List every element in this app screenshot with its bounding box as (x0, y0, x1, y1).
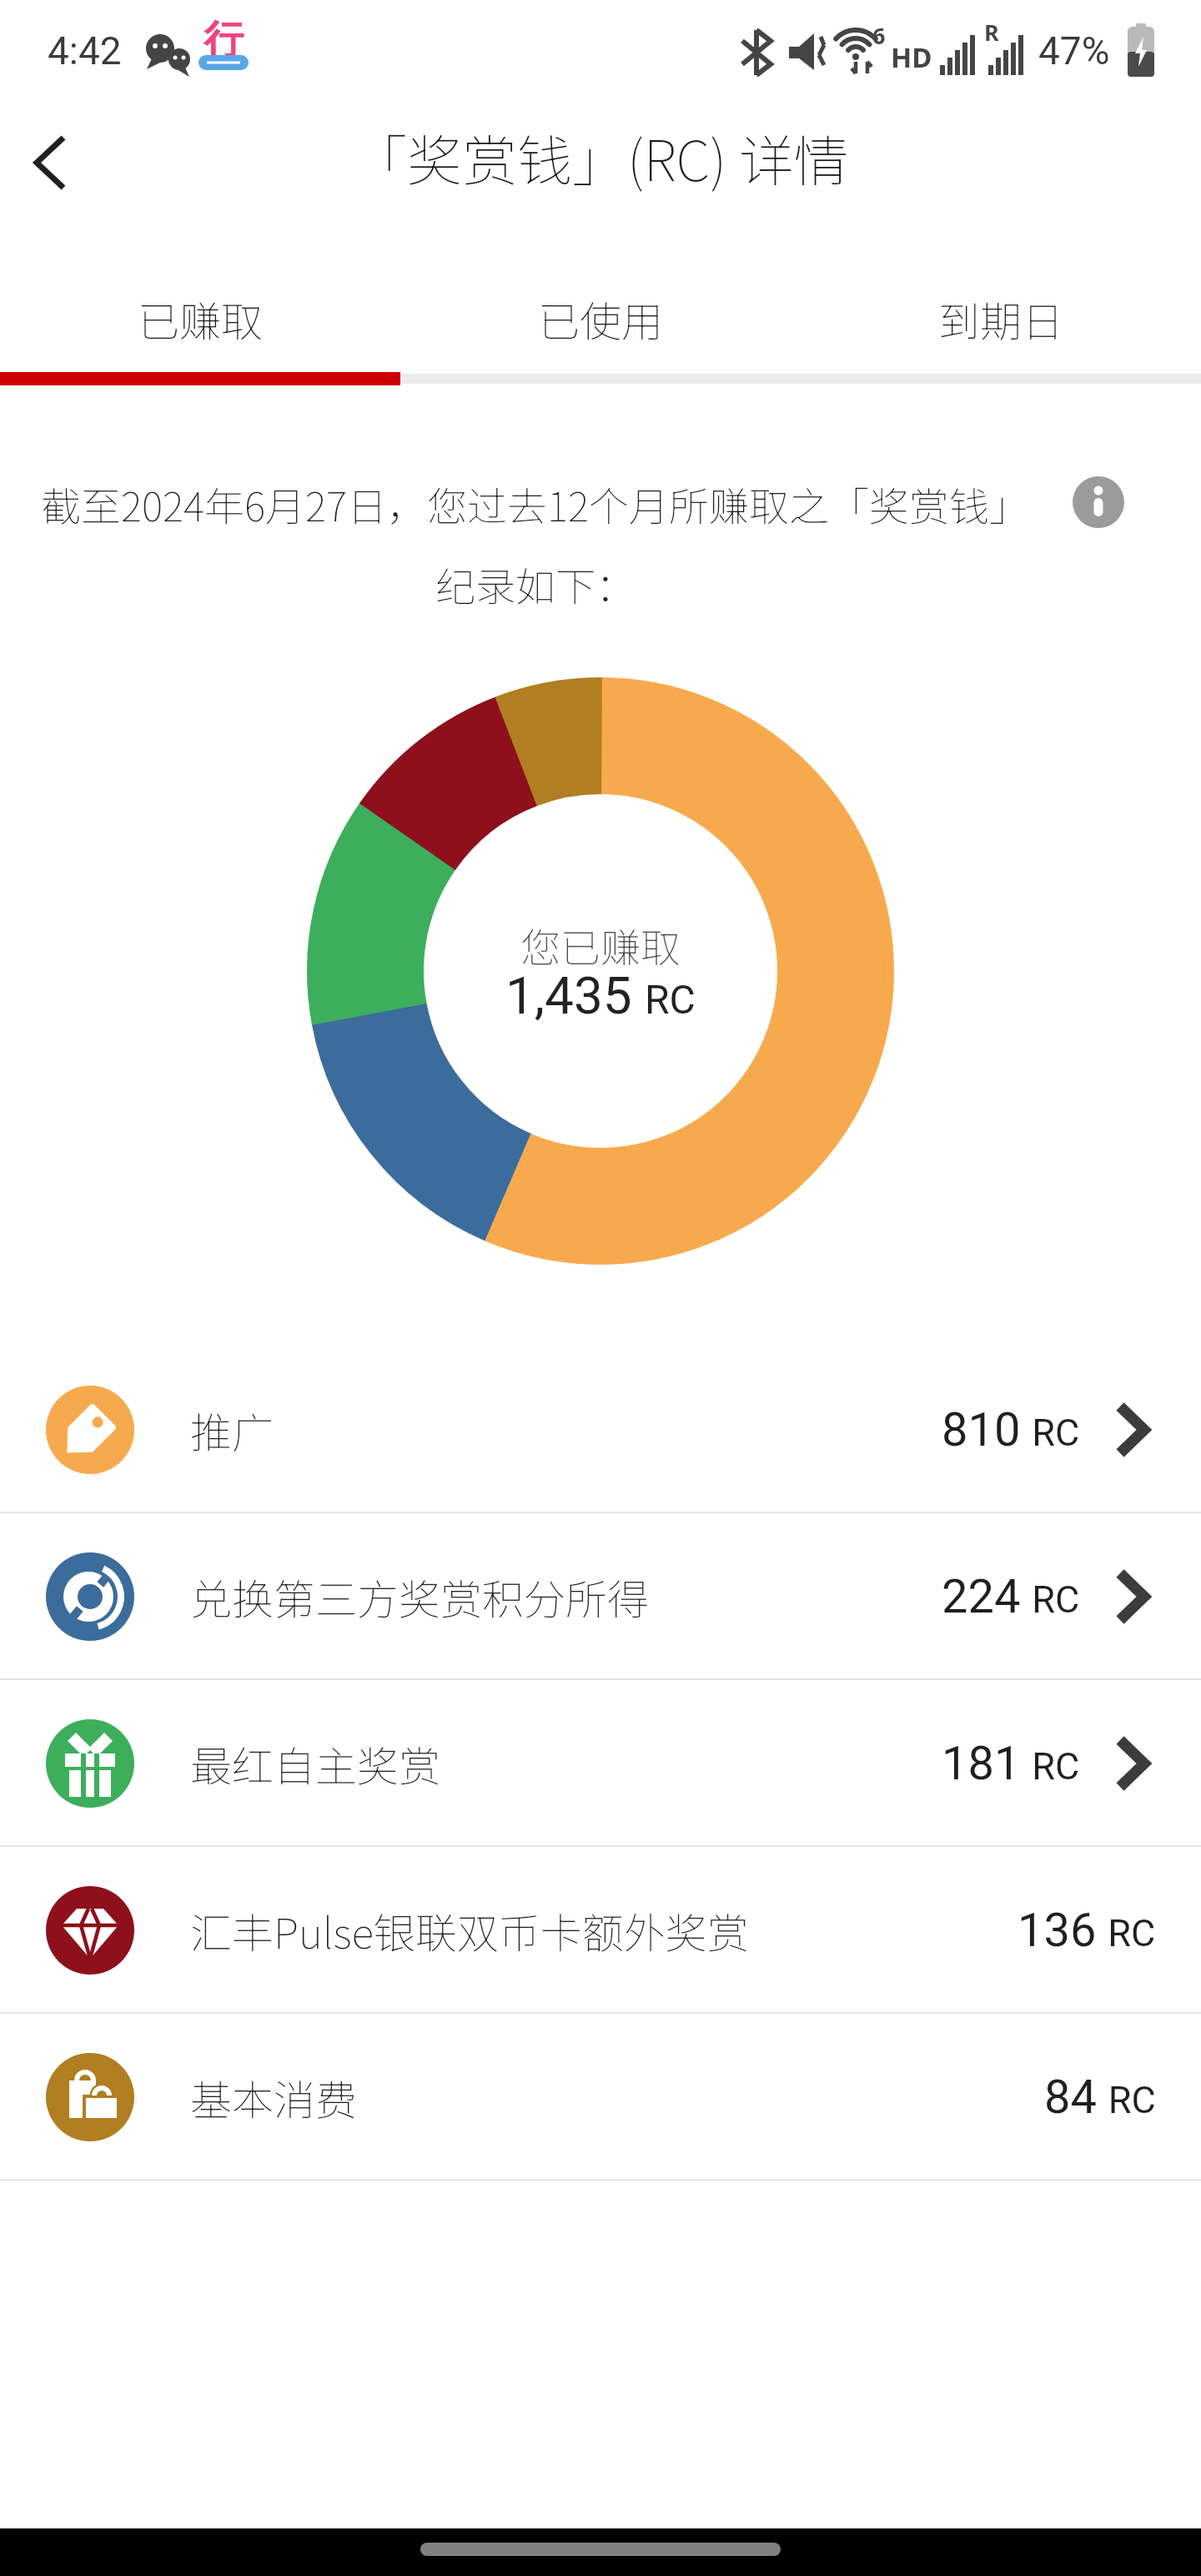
staticText: 已赚取 (138, 289, 263, 349)
button[interactable] (8, 125, 92, 200)
staticText: 136 RC (1018, 1903, 1156, 1958)
staticText: 224 RC (942, 1569, 1080, 1624)
staticText: R (984, 17, 999, 48)
staticText: 兑换第三方奖赏积分所得 (190, 1567, 649, 1627)
staticText: 行 (204, 15, 244, 65)
button[interactable] (1073, 476, 1124, 528)
staticText: 已使用 (538, 289, 663, 349)
button[interactable]: 推广 (0, 1346, 1201, 1513)
button[interactable]: 最红自主奖赏 (0, 1680, 1201, 1847)
button[interactable]: 汇丰Pulse银联双币卡额外奖赏 (0, 1847, 1201, 2014)
staticText: 181 RC (942, 1736, 1080, 1791)
button[interactable]: 已赚取 (0, 270, 400, 367)
staticText: 810 RC (942, 1402, 1080, 1457)
staticText: 推广 (190, 1400, 274, 1460)
button[interactable]: 基本消费 (0, 2014, 1201, 2181)
staticText: HD (891, 38, 932, 76)
staticText: 纪录如下： (435, 555, 636, 613)
staticText: 基本消费 (190, 2067, 357, 2127)
staticText: 1,435 RC (505, 965, 696, 1026)
staticText: 84 RC (1044, 2070, 1156, 2125)
staticText: 汇丰Pulse银联双币卡额外奖赏 (190, 1900, 749, 1960)
staticText: 6 (872, 20, 886, 51)
button[interactable]: 兑换第三方奖赏积分所得 (0, 1513, 1201, 1680)
staticText: 截至2024年6月27日，您过去12个月所赚取之「奖赏钱」 (41, 475, 1030, 533)
staticText: 您已赚取 (520, 916, 681, 966)
staticText: 到期日 (938, 289, 1063, 349)
button[interactable]: 到期日 (801, 270, 1201, 367)
staticText: 最红自主奖赏 (190, 1733, 440, 1794)
staticText: 47% (1038, 28, 1110, 73)
staticText: 4:42 (48, 28, 122, 73)
button[interactable]: 已使用 (400, 270, 801, 367)
staticText: 「奖赏钱」(RC) 详情 (352, 117, 849, 197)
